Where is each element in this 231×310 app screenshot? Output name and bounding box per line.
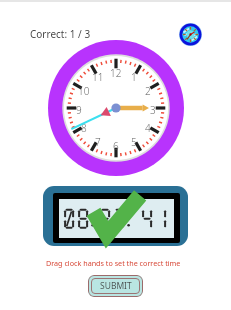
- staticText: 4: [145, 121, 151, 135]
- staticText: Drag clock hands to set the correct time: [46, 258, 181, 268]
- staticText: 5: [131, 135, 137, 149]
- button[interactable]: SUBMIT: [88, 275, 143, 297]
- button[interactable]: Hint: [179, 23, 202, 46]
- staticText: 3: [150, 103, 156, 117]
- staticText: 7: [95, 135, 101, 149]
- staticText: 9: [76, 103, 82, 117]
- staticText: 1: [131, 70, 137, 84]
- staticText: 10: [78, 84, 90, 98]
- staticText: 6: [113, 139, 119, 153]
- staticText: Correct: 1 / 3: [30, 27, 91, 41]
- staticText: 12: [110, 66, 122, 80]
- staticText: 11: [92, 70, 104, 84]
- staticText: 8: [81, 121, 87, 135]
- staticText: 2: [145, 84, 151, 98]
- staticText: SUBMIT: [100, 280, 132, 292]
